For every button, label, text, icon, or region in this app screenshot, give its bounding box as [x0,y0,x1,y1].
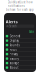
staticText: Quickly adjust how notifications [7,0,32,8]
button[interactable]: Privacy [4,52,36,56]
staticText: Alerts [6,19,18,24]
staticText: Battery [9,57,18,60]
staticText: Storage [9,61,19,65]
button[interactable]: Battery [4,56,36,61]
staticText: Focus [9,48,16,51]
button[interactable]: About [4,65,36,70]
button[interactable]: Storage [4,61,36,65]
staticText: Privacy [9,52,17,56]
button[interactable]: Edit [29,30,34,34]
staticText: Search [9,24,17,28]
button[interactable]: Display [4,38,36,43]
button[interactable]: General [4,34,36,38]
staticText: Sounds [9,43,19,47]
staticText: Edit [29,30,34,34]
button[interactable]: Sounds [4,43,36,47]
button[interactable]: Focus [4,47,36,52]
staticText: General [9,34,20,38]
staticText: Display [9,39,18,42]
staticText: About [9,66,18,69]
staticText: behave for each app [6,8,34,11]
